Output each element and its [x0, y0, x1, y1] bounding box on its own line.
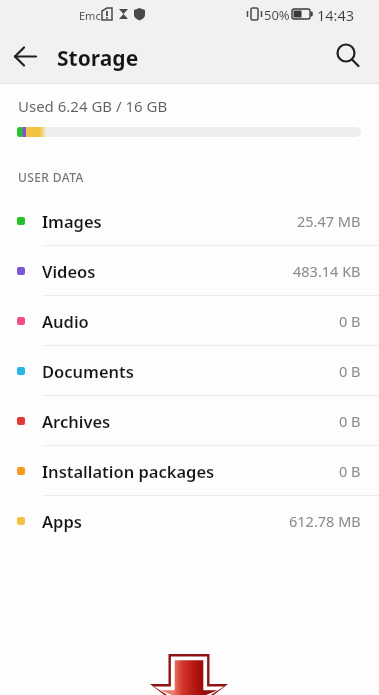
- staticText: 0 B: [339, 361, 361, 381]
- button[interactable]: Videos: [0, 246, 379, 296]
- button[interactable]: Audio: [0, 296, 379, 346]
- button[interactable]: Documents: [0, 346, 379, 396]
- button[interactable]: Apps: [0, 496, 379, 546]
- staticText: Apps: [42, 510, 82, 532]
- staticText: 50%: [264, 6, 290, 24]
- staticText: 0 B: [339, 411, 361, 431]
- button[interactable]: [8, 39, 42, 73]
- button[interactable]: Installation packages: [0, 446, 379, 496]
- staticText: 25.47 MB: [297, 211, 361, 231]
- staticText: 14:43: [317, 5, 355, 25]
- button[interactable]: Images: [0, 196, 379, 246]
- staticText: Emc: [79, 8, 101, 23]
- staticText: Used 6.24 GB / 16 GB: [18, 96, 168, 116]
- staticText: Installation packages: [42, 460, 215, 482]
- staticText: Storage: [57, 44, 139, 73]
- staticText: 0 B: [339, 461, 361, 481]
- staticText: Audio: [42, 310, 89, 332]
- staticText: Images: [42, 210, 102, 232]
- staticText: Documents: [42, 360, 134, 382]
- button[interactable]: [330, 38, 366, 74]
- staticText: Videos: [42, 260, 96, 282]
- staticText: USER DATA: [18, 169, 84, 185]
- staticText: 0 B: [339, 311, 361, 331]
- staticText: Archives: [42, 410, 111, 432]
- button[interactable]: Archives: [0, 396, 379, 446]
- staticText: 612.78 MB: [289, 511, 361, 531]
- staticText: 483.14 KB: [293, 261, 361, 281]
